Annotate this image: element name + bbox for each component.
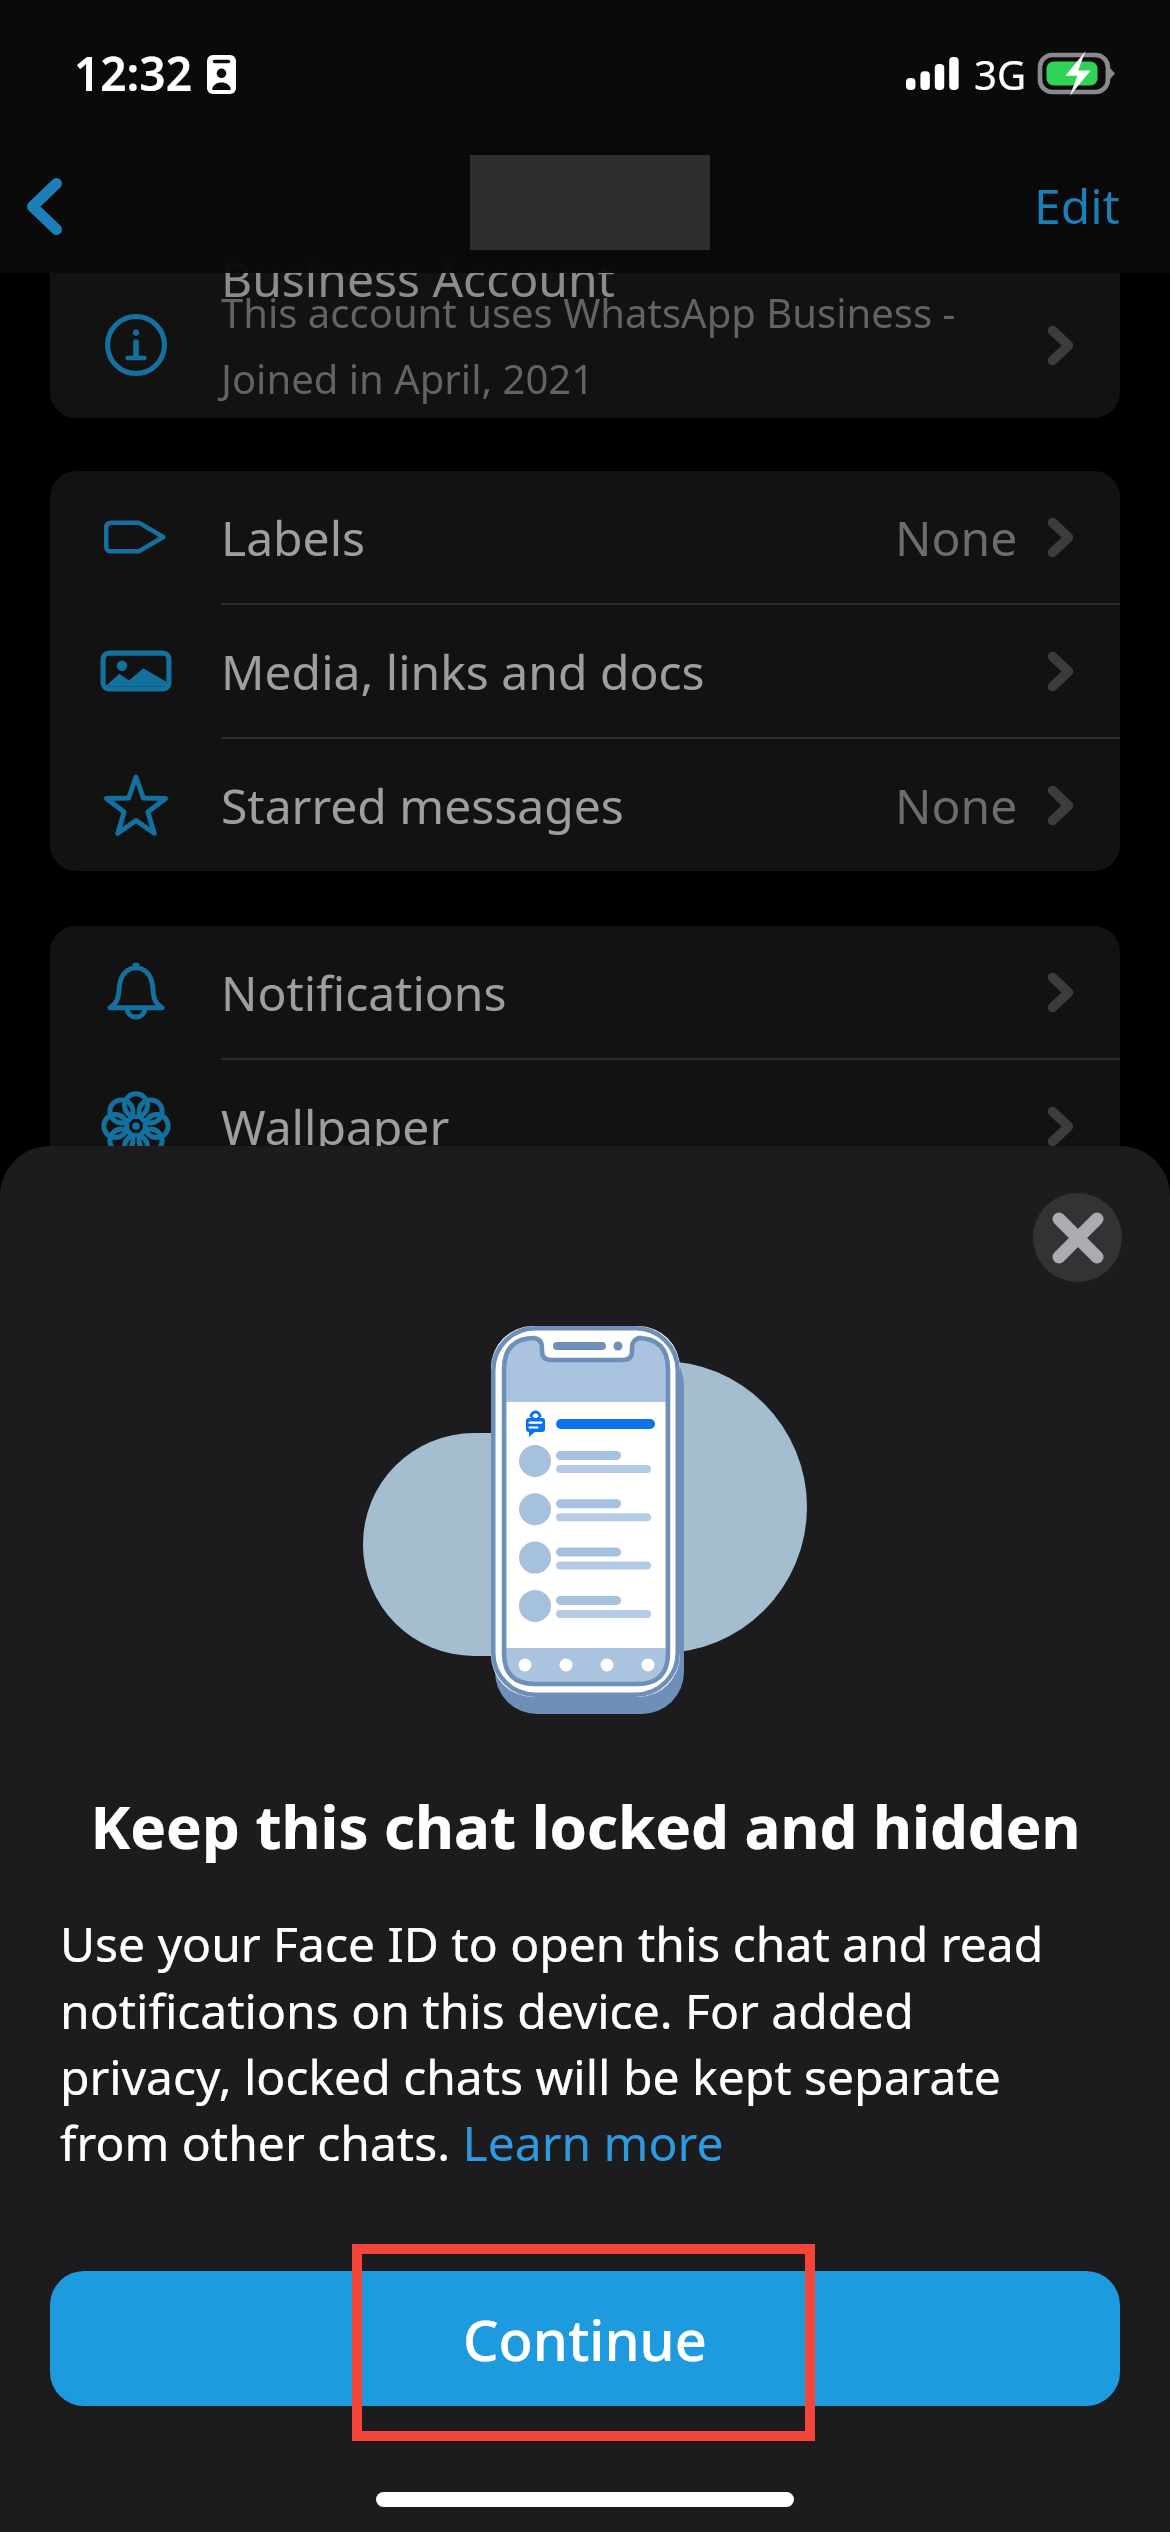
button[interactable]: Edit (1022, 163, 1132, 248)
button[interactable]: Notifications (50, 926, 1120, 1058)
staticText: None (895, 505, 1018, 570)
staticText: Use your Face ID to open this chat and r… (60, 1911, 1060, 2175)
staticText: Business Account (221, 246, 615, 311)
staticText: Joined in April, 2021 (221, 351, 595, 405)
button[interactable]: Business Account (50, 201, 1120, 418)
staticText: Notifications (221, 960, 1018, 1025)
staticText: 3G (974, 47, 1026, 101)
staticText: Labels (221, 505, 895, 570)
staticText: Starred messages (221, 773, 895, 838)
button[interactable]: Continue (50, 2271, 1120, 2406)
staticText: Media, links and docs (221, 639, 1018, 704)
staticText: This account uses WhatsApp Business - (221, 285, 956, 339)
button[interactable]: Media, links and docs (50, 605, 1120, 737)
staticText: Keep this chat locked and hidden (90, 1785, 1081, 1867)
button[interactable]: Starred messages (50, 739, 1120, 871)
button[interactable]: Labels (50, 471, 1120, 603)
staticText: Edit (1034, 173, 1120, 238)
button[interactable]: Learn more (464, 2112, 726, 2174)
button[interactable]: Wallpaper (50, 1060, 1120, 1192)
staticText: 12:32 (74, 42, 192, 105)
button[interactable]: Close (1033, 1193, 1122, 1282)
button[interactable]: Back (0, 153, 90, 261)
staticText: Wallpaper (221, 1094, 1018, 1159)
staticText: None (895, 773, 1018, 838)
staticText: Continue (463, 2301, 707, 2377)
